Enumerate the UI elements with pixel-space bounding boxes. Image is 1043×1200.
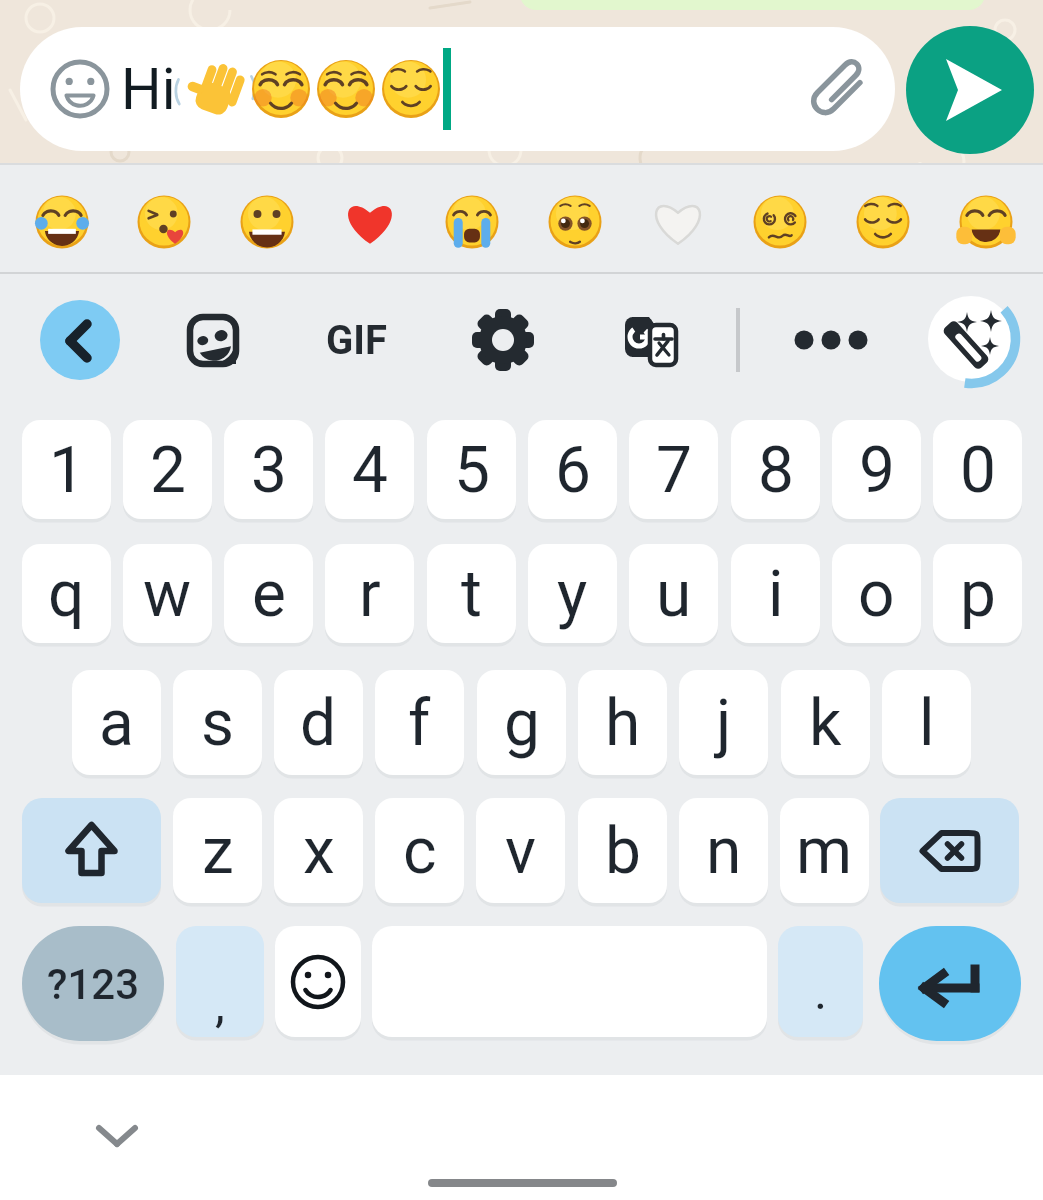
button[interactable]: j <box>679 670 768 776</box>
staticText: y <box>557 557 588 632</box>
button[interactable] <box>879 926 1021 1042</box>
staticText: e <box>252 557 286 632</box>
button[interactable] <box>230 185 304 259</box>
staticText: 9 <box>859 433 895 508</box>
button[interactable] <box>641 185 715 259</box>
button[interactable]: r <box>325 544 414 644</box>
staticText: 0 <box>960 433 996 508</box>
staticText: v <box>505 814 536 889</box>
button[interactable]: 1 <box>22 420 111 520</box>
button[interactable]: l <box>882 670 971 776</box>
button[interactable]: 6 <box>528 420 617 520</box>
button[interactable]: . <box>778 926 863 1038</box>
button[interactable]: k <box>781 670 870 776</box>
button[interactable]: 2 <box>123 420 212 520</box>
button[interactable]: t <box>427 544 516 644</box>
button[interactable]: 7 <box>629 420 718 520</box>
staticText: r <box>359 557 381 632</box>
button[interactable]: b <box>578 798 667 904</box>
staticText: . <box>814 963 828 1022</box>
button[interactable] <box>372 926 767 1038</box>
button[interactable]: 9 <box>832 420 921 520</box>
staticText: w <box>143 557 192 632</box>
button[interactable] <box>925 293 1021 389</box>
button[interactable] <box>786 305 876 375</box>
staticText: Hi <box>121 56 176 123</box>
button[interactable] <box>46 55 114 123</box>
staticText: b <box>605 814 641 889</box>
button[interactable] <box>20 27 895 151</box>
staticText: 2 <box>150 433 186 508</box>
staticText: h <box>605 686 641 761</box>
button[interactable]: v <box>476 798 565 904</box>
button[interactable]: p <box>933 544 1022 644</box>
button[interactable] <box>538 185 612 259</box>
button[interactable]: 4 <box>325 420 414 520</box>
button[interactable] <box>25 185 99 259</box>
button[interactable]: , <box>176 926 264 1038</box>
button[interactable]: s <box>173 670 262 776</box>
staticText: z <box>202 814 234 889</box>
button[interactable]: y <box>528 544 617 644</box>
button[interactable] <box>178 305 248 375</box>
button[interactable]: n <box>679 798 768 904</box>
button[interactable]: m <box>780 798 869 904</box>
staticText: GIF <box>326 317 387 364</box>
button[interactable]: a <box>72 670 161 776</box>
staticText: g <box>504 686 540 761</box>
button[interactable]: 0 <box>933 420 1022 520</box>
staticText: s <box>201 686 235 761</box>
staticText: 8 <box>758 433 794 508</box>
button[interactable]: 3 <box>224 420 313 520</box>
button[interactable]: x <box>274 798 363 904</box>
button[interactable] <box>906 26 1034 154</box>
button[interactable]: 5 <box>427 420 516 520</box>
staticText: i <box>768 557 784 632</box>
staticText: t <box>461 557 482 632</box>
button[interactable]: u <box>629 544 718 644</box>
button[interactable]: w <box>123 544 212 644</box>
button[interactable]: h <box>578 670 667 776</box>
button[interactable] <box>614 305 684 375</box>
staticText: m <box>796 814 853 889</box>
button[interactable]: i <box>731 544 820 644</box>
staticText: f <box>408 686 431 761</box>
staticText: x <box>303 814 335 889</box>
button[interactable] <box>40 300 120 380</box>
staticText: o <box>858 557 895 632</box>
staticText: 4 <box>352 433 388 508</box>
button[interactable]: d <box>274 670 363 776</box>
button[interactable]: e <box>224 544 313 644</box>
button[interactable]: ?123 <box>22 926 164 1042</box>
button[interactable] <box>846 185 920 259</box>
staticText: j <box>716 686 732 761</box>
button[interactable]: c <box>375 798 464 904</box>
button[interactable]: q <box>22 544 111 644</box>
button[interactable] <box>743 185 817 259</box>
button[interactable] <box>949 185 1023 259</box>
button[interactable] <box>880 798 1019 904</box>
staticText: q <box>48 557 85 632</box>
button[interactable] <box>22 798 161 904</box>
button[interactable]: GIF <box>306 305 406 375</box>
button[interactable] <box>127 185 201 259</box>
button[interactable] <box>435 185 509 259</box>
button[interactable]: g <box>477 670 566 776</box>
button[interactable]: f <box>375 670 464 776</box>
staticText: d <box>300 686 337 761</box>
button[interactable] <box>468 305 538 375</box>
button[interactable]: z <box>173 798 262 904</box>
staticText: ?123 <box>47 960 140 1009</box>
button[interactable]: o <box>832 544 921 644</box>
staticText: a <box>99 686 134 761</box>
button[interactable] <box>275 926 361 1038</box>
button[interactable] <box>95 1120 139 1152</box>
staticText: 1 <box>49 433 85 508</box>
button[interactable] <box>804 55 872 123</box>
staticText: 7 <box>656 433 692 508</box>
staticText: p <box>960 557 996 632</box>
staticText: c <box>403 814 437 889</box>
staticText: l <box>919 686 935 761</box>
button[interactable]: 8 <box>731 420 820 520</box>
button[interactable] <box>333 185 407 259</box>
